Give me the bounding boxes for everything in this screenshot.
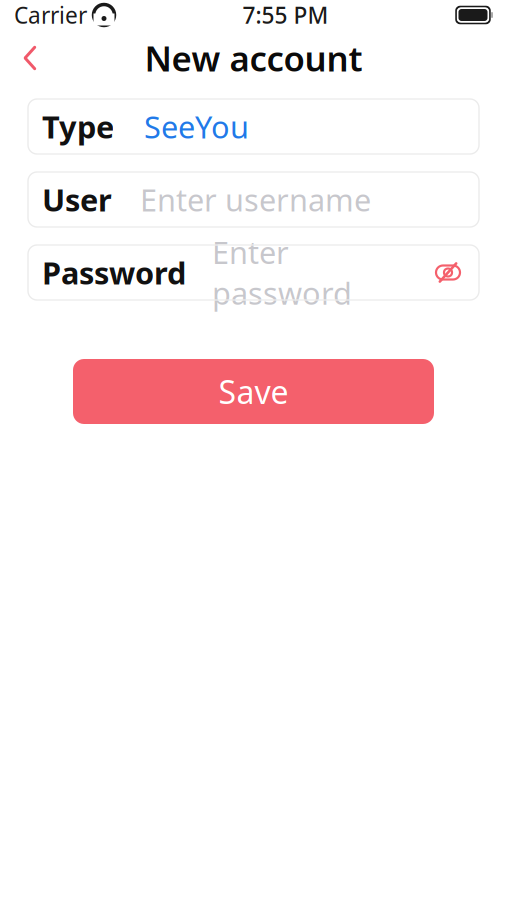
button[interactable]: Show password [431,255,465,289]
staticText: Enter password [212,232,352,313]
button[interactable]: Save [73,359,434,424]
staticText: Enter username [140,179,371,220]
staticText: Password [42,252,186,293]
staticText: Type [42,106,114,147]
staticText: SeeYou [144,106,249,147]
staticText: Save [218,370,288,413]
button[interactable]: SeeYou [144,106,249,147]
staticText: Carrier [14,0,87,30]
staticText: New account [144,35,362,81]
staticText: 7:55 PM [242,0,328,30]
button[interactable]: Back [6,34,54,82]
staticText: User [42,179,112,220]
